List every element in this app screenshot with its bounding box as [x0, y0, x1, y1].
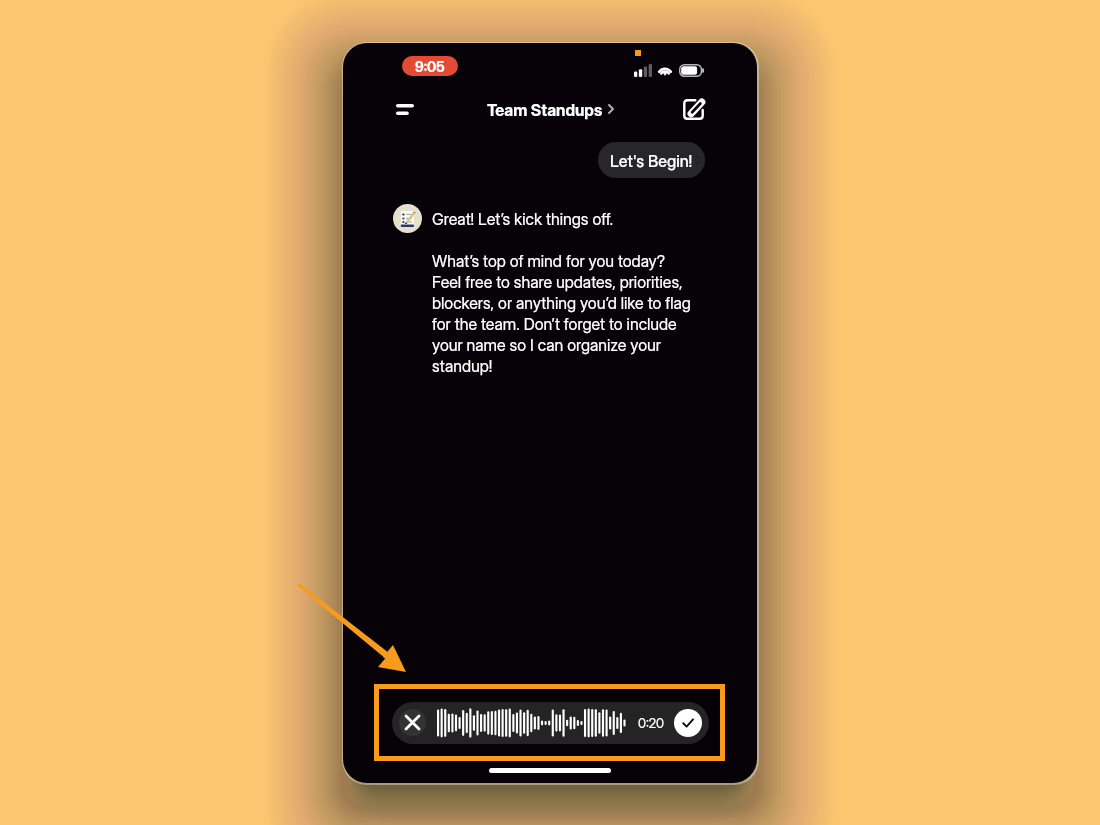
staticText: 0:20: [638, 715, 665, 731]
button[interactable]: Team Standups: [487, 95, 614, 123]
button[interactable]: Menu: [391, 95, 419, 123]
button[interactable]: Send recording: [674, 709, 702, 737]
button[interactable]: Cancel recording: [399, 709, 426, 736]
button[interactable]: Let's Begin!: [598, 142, 705, 178]
staticText: What’s top of mind for you today? Feel f…: [432, 250, 691, 376]
staticText: Team Standups: [487, 100, 603, 119]
staticText: Let's Begin!: [610, 151, 693, 170]
staticText: Great! Let’s kick things off.: [432, 208, 614, 229]
button[interactable]: Compose new message: [679, 95, 707, 123]
staticText: 9:05: [415, 58, 445, 75]
button[interactable]: Play recording: [437, 708, 627, 738]
